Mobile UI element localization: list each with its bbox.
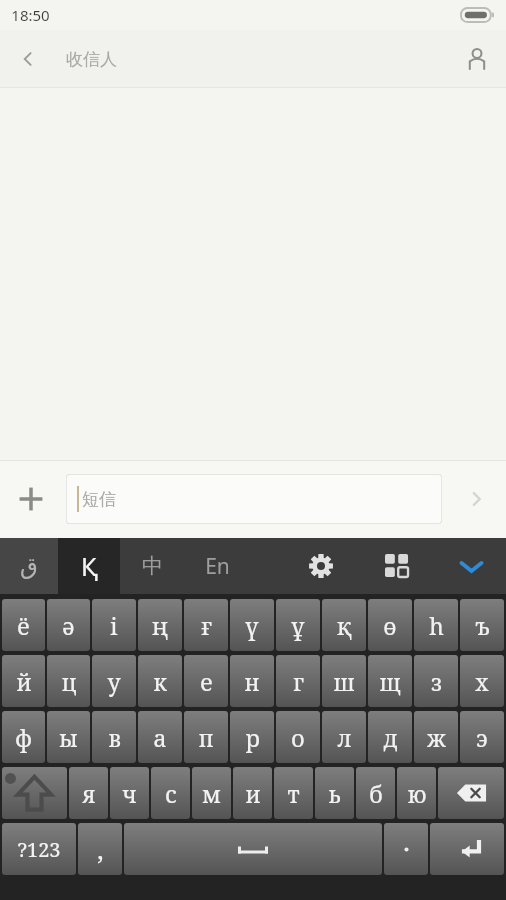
staticText: д	[383, 722, 398, 753]
button[interactable]: о	[276, 711, 320, 763]
button[interactable]: ё	[2, 599, 45, 651]
button[interactable]: р	[230, 711, 274, 763]
staticText: 短信	[82, 489, 116, 510]
button[interactable]: н	[230, 655, 274, 707]
button[interactable]: т	[274, 767, 313, 819]
staticText: ө	[383, 610, 397, 641]
button[interactable]: и	[233, 767, 272, 819]
button[interactable]: More keyboards	[372, 538, 422, 594]
button[interactable]: ъ	[460, 599, 504, 651]
button[interactable]: ш	[322, 655, 366, 707]
staticText: ق	[20, 553, 38, 580]
staticText: м	[202, 778, 221, 809]
staticText: қ	[337, 610, 352, 641]
staticText: ы	[59, 722, 78, 753]
button[interactable]: і	[92, 599, 136, 651]
staticText: h	[429, 610, 444, 641]
staticText: а	[153, 722, 167, 753]
button[interactable]: ұ	[276, 599, 320, 651]
staticText: ә	[62, 610, 75, 641]
staticText: ш	[333, 666, 355, 697]
button[interactable]: к	[138, 655, 182, 707]
button[interactable]: ?123	[2, 823, 76, 875]
button[interactable]: я	[69, 767, 108, 819]
button[interactable]: а	[138, 711, 182, 763]
staticText: у	[107, 666, 121, 697]
staticText: 中	[142, 553, 163, 579]
staticText: Қ	[81, 549, 98, 583]
button[interactable]: h	[414, 599, 458, 651]
staticText: о	[291, 722, 305, 753]
staticText: En	[205, 552, 230, 581]
button[interactable]: з	[414, 655, 458, 707]
button[interactable]: х	[460, 655, 504, 707]
staticText: ?123	[17, 836, 61, 863]
button[interactable]: Қ	[58, 538, 120, 594]
button[interactable]: б	[356, 767, 395, 819]
button[interactable]: ә	[47, 599, 90, 651]
button[interactable]: қ	[322, 599, 366, 651]
staticText: к	[153, 666, 167, 697]
button[interactable]: ж	[414, 711, 458, 763]
staticText: я	[82, 778, 96, 809]
button[interactable]: Hide keyboard	[444, 538, 498, 594]
button[interactable]: ц	[47, 655, 90, 707]
staticText: ж	[427, 722, 446, 753]
button[interactable]: в	[92, 711, 136, 763]
staticText: 收信人	[66, 49, 117, 70]
button[interactable]: м	[192, 767, 231, 819]
button[interactable]: Shift	[2, 767, 67, 819]
staticText: с	[165, 778, 177, 809]
staticText: 18:50	[11, 5, 50, 25]
button[interactable]: Add attachment	[0, 469, 62, 529]
button[interactable]: Settings	[296, 538, 346, 594]
staticText: н	[244, 666, 260, 697]
button[interactable]: ю	[397, 767, 436, 819]
staticText: р	[245, 722, 260, 753]
button[interactable]: Back	[0, 31, 56, 87]
staticText: ф	[15, 722, 32, 753]
button[interactable]	[384, 823, 428, 875]
staticText: ь	[328, 778, 341, 809]
button[interactable]: Space	[124, 823, 382, 875]
staticText: ё	[17, 610, 30, 641]
staticText: з	[431, 666, 442, 697]
staticText: и	[245, 778, 261, 809]
staticText: й	[16, 666, 32, 697]
button[interactable]: 中	[120, 538, 184, 594]
button[interactable]: Send	[446, 469, 506, 529]
button[interactable]: ч	[110, 767, 149, 819]
button[interactable]: д	[368, 711, 412, 763]
button[interactable]: е	[184, 655, 228, 707]
staticText: т	[287, 778, 300, 809]
button[interactable]: ң	[138, 599, 182, 651]
button[interactable]: 短信	[66, 474, 442, 524]
button[interactable]: Backspace	[438, 767, 504, 819]
button[interactable]: щ	[368, 655, 412, 707]
button[interactable]: ы	[47, 711, 90, 763]
staticText: щ	[379, 666, 401, 697]
button[interactable]: Contacts	[448, 31, 506, 87]
button[interactable]: ө	[368, 599, 412, 651]
staticText: э	[476, 722, 488, 753]
button[interactable]: й	[2, 655, 45, 707]
staticText: ғ	[201, 610, 212, 641]
button[interactable]: ү	[230, 599, 274, 651]
button[interactable]: у	[92, 655, 136, 707]
button[interactable]: л	[322, 711, 366, 763]
staticText: ү	[245, 610, 259, 641]
button[interactable]: ф	[2, 711, 45, 763]
button[interactable]: с	[151, 767, 190, 819]
button[interactable]: En	[184, 538, 250, 594]
button[interactable]: ,	[78, 823, 122, 875]
button[interactable]: ق	[0, 538, 58, 594]
staticText: б	[369, 778, 383, 809]
button[interactable]: г	[276, 655, 320, 707]
button[interactable]: п	[184, 711, 228, 763]
button[interactable]: ғ	[184, 599, 228, 651]
button[interactable]: Enter	[430, 823, 504, 875]
staticText: ч	[122, 778, 137, 809]
staticText: п	[198, 722, 214, 753]
button[interactable]: э	[460, 711, 504, 763]
button[interactable]: ь	[315, 767, 354, 819]
